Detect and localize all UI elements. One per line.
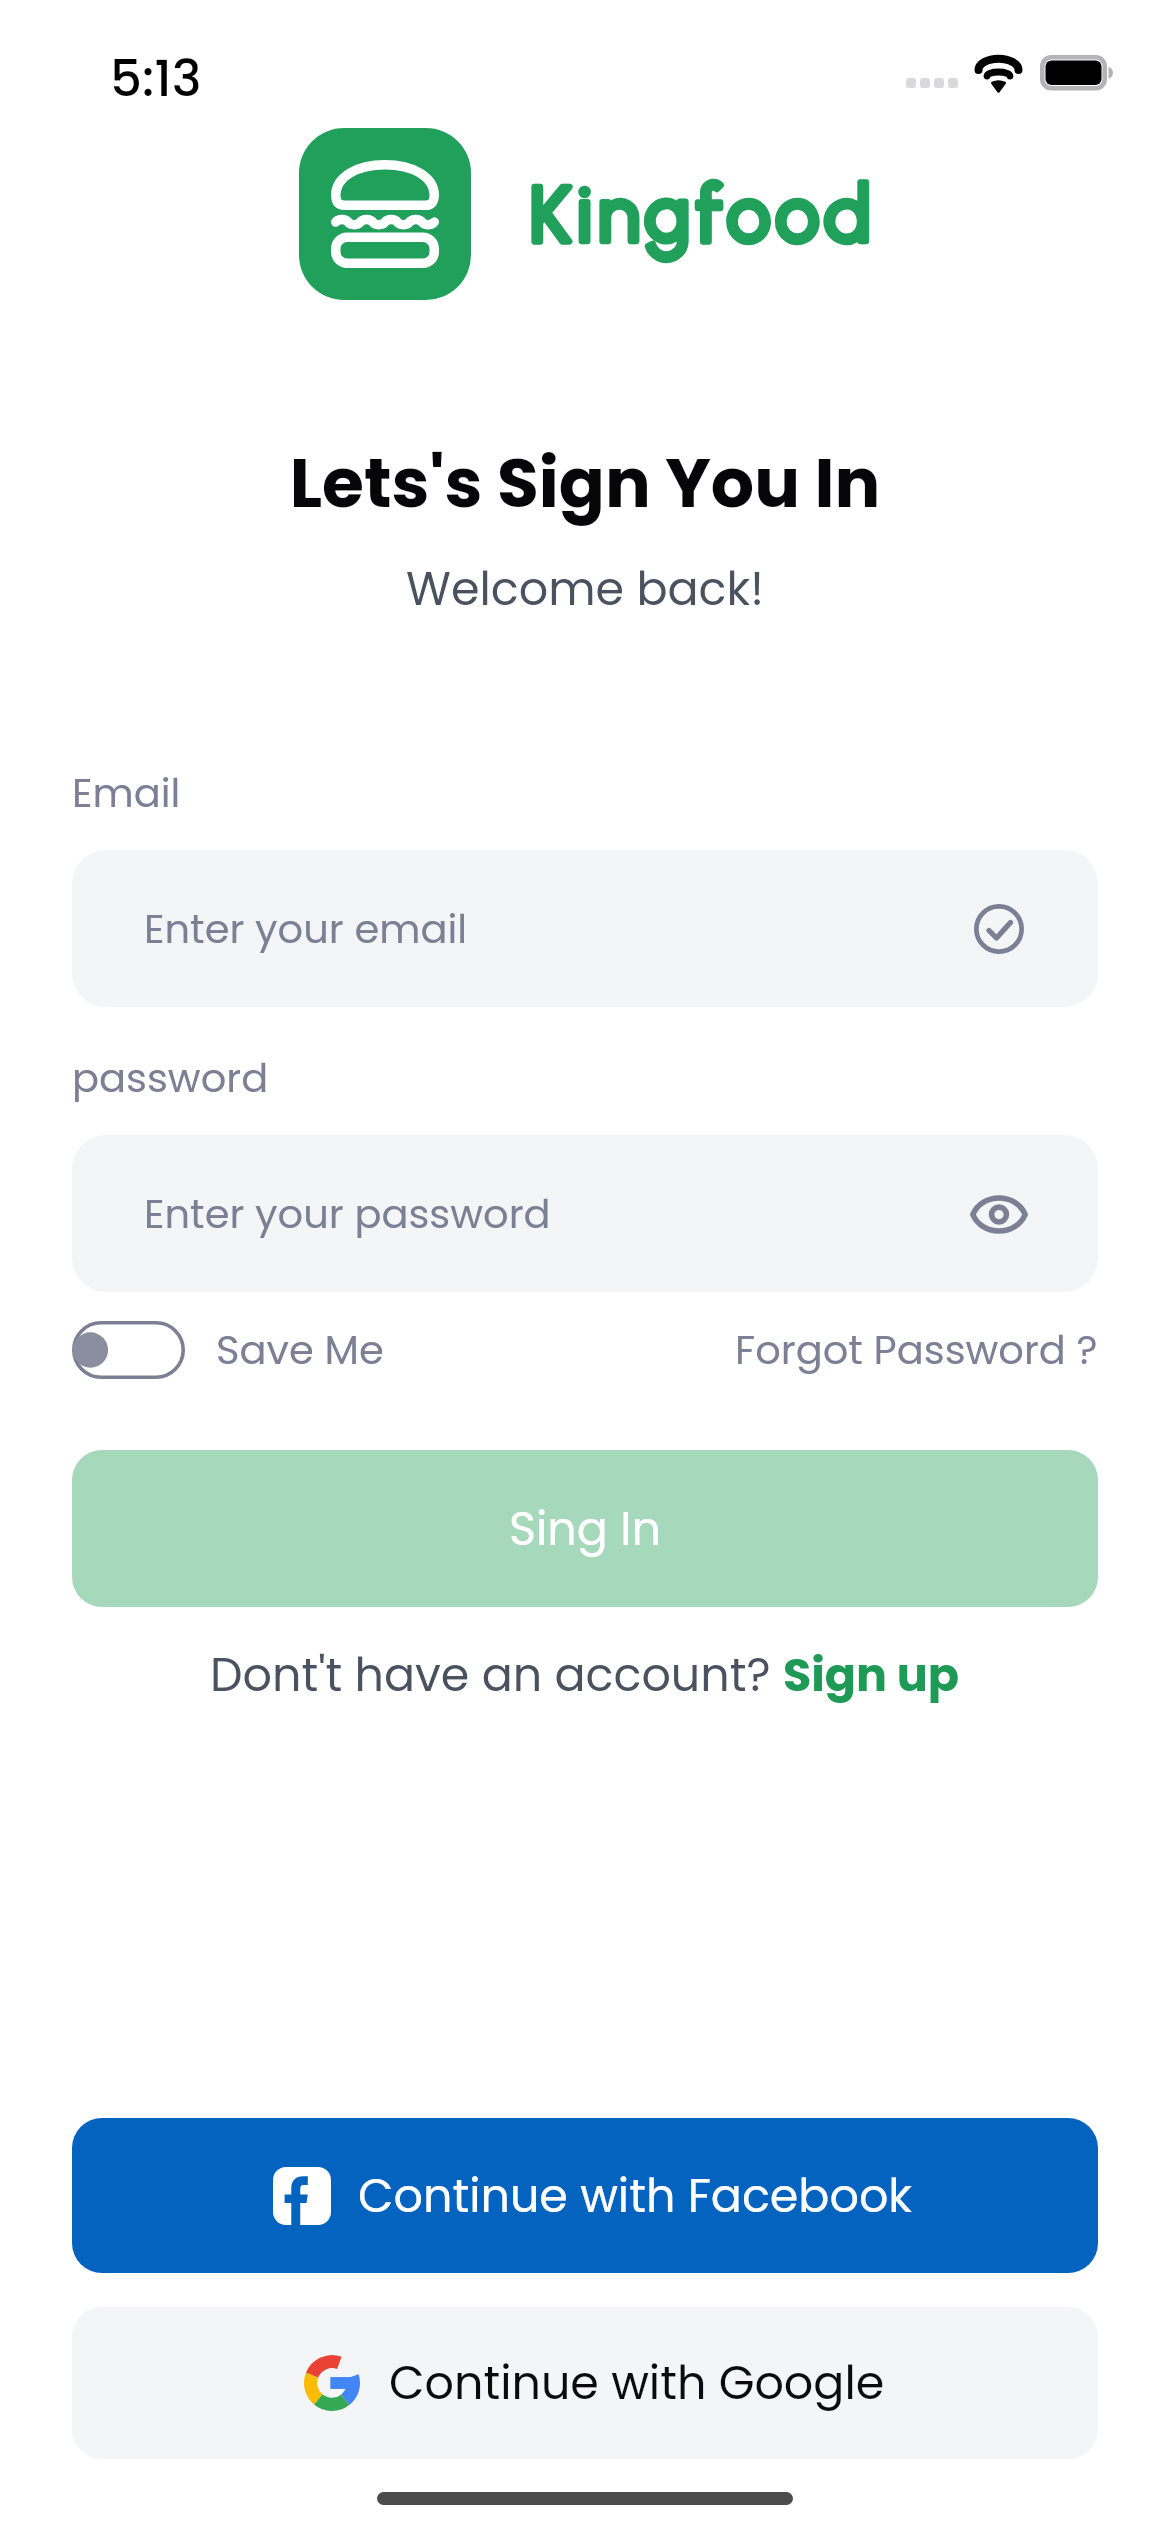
other: Google [304,2355,360,2411]
staticText: Enter your password [144,1186,551,1242]
button[interactable]: Sing In [72,1450,1098,1607]
button[interactable]: Facebook [72,2118,1098,2273]
button[interactable]: Google [72,2307,1098,2459]
button[interactable]: Enter your email [72,850,1098,1007]
staticText: password [72,1050,269,1106]
staticText: Welcome back! [0,557,1170,621]
button[interactable]: Forgot Password ? [735,1322,1098,1378]
staticText: Dont't have an account? [210,1643,783,1707]
staticText: Email [72,765,181,821]
staticText: Continue with Facebook [358,2164,913,2228]
staticText: Forgot Password ? [735,1322,1098,1378]
button[interactable]: Save Me [72,1321,384,1379]
staticText: Kingfood [530,168,877,260]
button[interactable]: Email valid [970,900,1028,958]
staticText: Lets's Sign You In [0,436,1170,531]
staticText: Sing In [509,1497,661,1561]
staticText: 5:13 [110,44,202,114]
staticText: Kingfood [530,168,877,260]
staticText: Continue with Google [389,2351,885,2415]
staticText: Enter your email [144,901,468,957]
staticText: Sign up [783,1643,960,1707]
button[interactable]: Enter your password [72,1135,1098,1292]
other: Facebook [273,2167,331,2225]
button[interactable]: Show password [970,1185,1028,1243]
staticText: Save Me [216,1322,384,1378]
button[interactable]: Sign up [783,1643,960,1707]
